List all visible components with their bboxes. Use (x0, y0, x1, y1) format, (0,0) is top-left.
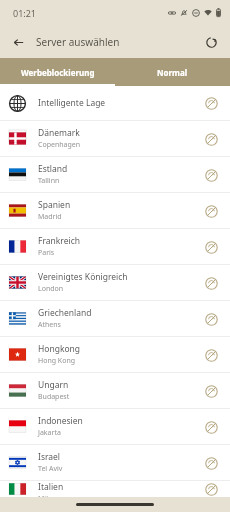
button[interactable]: Ping Griechenland (201, 309, 221, 329)
button[interactable]: Hongkong (0, 337, 230, 372)
button[interactable]: Italien (0, 481, 230, 497)
staticText: Vereinigtes Königreich (38, 271, 128, 283)
staticText: Budapest (38, 392, 70, 402)
button[interactable]: Back (8, 32, 28, 52)
button[interactable]: Ping Estland (201, 165, 221, 185)
button[interactable]: Intelligente Lage (0, 86, 230, 120)
staticText: Intelligente Lage (38, 97, 106, 109)
button[interactable]: Ping Hongkong (201, 345, 221, 365)
staticText: Estland (38, 163, 68, 175)
button[interactable]: Ping Indonesien (201, 417, 221, 437)
button[interactable]: Ping Ungarn (201, 381, 221, 401)
button[interactable]: Vereinigtes Königreich (0, 265, 230, 300)
staticText: Milan (38, 494, 57, 497)
staticText: Server auswählen (36, 35, 120, 49)
staticText: Frankreich (38, 235, 80, 247)
button[interactable]: Werbeblockierung (0, 58, 115, 86)
staticText: Jakarta (38, 428, 61, 438)
staticText: Hongkong (38, 343, 81, 355)
button[interactable]: Israel (0, 445, 230, 480)
staticText: Israel (38, 451, 61, 463)
button[interactable]: Refresh (201, 32, 221, 52)
staticText: Italien (38, 481, 64, 493)
button[interactable]: Ping Dänemark (201, 129, 221, 149)
staticText: Paris (38, 248, 55, 258)
button[interactable]: Normal (115, 58, 230, 86)
button[interactable]: Frankreich (0, 229, 230, 264)
staticText: Ungarn (38, 379, 69, 391)
button[interactable]: Ping Vereinigtes Königreich (201, 273, 221, 293)
staticText: Tallinn (38, 176, 60, 186)
staticText: Griechenland (38, 307, 92, 319)
staticText: Indonesien (38, 415, 83, 427)
button[interactable]: Ungarn (0, 373, 230, 408)
staticText: Normal (157, 67, 188, 78)
staticText: Werbeblockierung (21, 67, 95, 78)
button[interactable]: Estland (0, 157, 230, 192)
staticText: Spanien (38, 199, 71, 211)
button[interactable]: Ping Italien (201, 481, 221, 497)
button[interactable]: Dänemark (0, 121, 230, 156)
staticText: Athens (38, 320, 61, 330)
button[interactable]: Spanien (0, 193, 230, 228)
button[interactable]: Ping Intelligente Lage (201, 93, 221, 113)
button[interactable]: Griechenland (0, 301, 230, 336)
staticText: Tel Aviv (38, 464, 63, 474)
button[interactable]: Ping Spanien (201, 201, 221, 221)
staticText: Hong Kong (38, 356, 76, 366)
staticText: Dänemark (38, 127, 80, 139)
button[interactable]: Indonesien (0, 409, 230, 444)
button[interactable]: Ping Israel (201, 453, 221, 473)
staticText: London (38, 284, 64, 294)
button[interactable]: Ping Frankreich (201, 237, 221, 257)
staticText: 01:21 (13, 7, 37, 19)
staticText: Madrid (38, 212, 62, 222)
staticText: Copenhagen (38, 140, 81, 150)
